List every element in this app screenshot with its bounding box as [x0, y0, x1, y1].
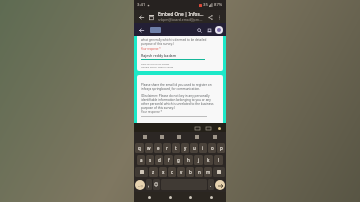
staticText: r — [166, 145, 168, 151]
button[interactable]: c — [168, 167, 176, 177]
button[interactable]: i — [199, 143, 207, 153]
staticText: j — [198, 157, 200, 163]
button[interactable]: Recents — [185, 192, 195, 202]
staticText: v — [180, 169, 183, 175]
staticText: h — [187, 157, 190, 163]
staticText: w — [147, 145, 151, 151]
button[interactable]: Search — [195, 26, 203, 34]
button[interactable]: Keyboard shortcut 2 — [153, 132, 170, 142]
staticText: Embed One | Infosys Springbo… — [158, 11, 204, 17]
staticText: g — [177, 157, 180, 163]
staticText: n — [198, 169, 201, 175]
button[interactable]: m — [204, 167, 212, 177]
staticText: l — [218, 157, 220, 163]
staticText: p — [220, 145, 223, 151]
button[interactable]: y — [181, 143, 189, 153]
staticText: purpose of this survey.) — [141, 106, 175, 110]
button[interactable]: ☺ — [153, 179, 160, 190]
button[interactable]: l — [214, 155, 223, 165]
button[interactable]: n — [195, 167, 203, 177]
button[interactable]: Translate — [193, 124, 201, 132]
button[interactable]: Switch keyboard — [135, 180, 145, 190]
button[interactable]: Share — [206, 13, 214, 21]
staticText: e — [157, 145, 160, 151]
staticText: srbpm@board.email@pm.com — [158, 17, 204, 22]
staticText: i — [202, 145, 204, 151]
staticText: Google Forms. Report Abuse — [141, 65, 174, 68]
button[interactable]: Notifications — [205, 26, 213, 34]
button[interactable]: Back — [144, 192, 154, 202]
button[interactable]: q — [135, 143, 144, 153]
staticText: u — [193, 145, 196, 151]
staticText: Rajesh reddy badam — [141, 53, 177, 58]
staticText: d — [158, 157, 161, 163]
button[interactable]: t — [172, 143, 180, 153]
button[interactable]: z — [149, 167, 158, 177]
staticText: Please share the email id you used to re… — [141, 83, 212, 87]
button[interactable]: p — [217, 143, 225, 153]
staticText: t — [175, 145, 177, 151]
button[interactable]: f — [164, 155, 173, 165]
button[interactable]: r — [163, 143, 171, 153]
button[interactable]: Clipboard — [204, 124, 212, 132]
button[interactable]: what generally which is deemed to be det… — [137, 36, 223, 71]
staticText: 35 — [203, 2, 208, 8]
button[interactable]: w — [145, 143, 153, 153]
button[interactable]: Keyboard shortcut 4 — [188, 132, 206, 142]
staticText: , — [148, 182, 150, 188]
staticText: q — [138, 145, 141, 151]
staticText: what generally which is deemed to be det… — [141, 38, 207, 42]
button[interactable]: Keyboard shortcut 3 — [170, 132, 188, 142]
staticText: identifiable information belonging to yo… — [141, 98, 211, 102]
staticText: s — [149, 157, 152, 163]
button[interactable]: b — [186, 167, 194, 177]
staticText: purpose of this survey.) — [141, 42, 174, 46]
button[interactable]: k — [204, 155, 213, 165]
staticText: f — [168, 157, 170, 163]
button[interactable]: Keyboard shortcut 5 — [206, 132, 224, 142]
button[interactable]: Shift — [135, 167, 148, 177]
button[interactable]: Enter — [215, 180, 225, 190]
button[interactable]: Settings — [215, 124, 223, 132]
staticText: Your response * — [141, 110, 163, 114]
button[interactable]: More options — [215, 13, 223, 21]
staticText: . — [210, 182, 212, 188]
staticText: other person(s) which is unrelated to th… — [141, 102, 214, 106]
staticText: c — [171, 169, 174, 175]
button[interactable]: v — [177, 167, 185, 177]
staticText: y — [184, 145, 187, 151]
button[interactable]: Back — [137, 13, 145, 21]
button[interactable]: Archive — [147, 13, 155, 21]
button[interactable]: u — [190, 143, 198, 153]
button[interactable]: d — [155, 155, 163, 165]
staticText: a — [140, 157, 143, 163]
staticText: 87% — [214, 2, 223, 8]
button[interactable]: Assistant — [206, 192, 216, 202]
button[interactable]: Home — [165, 192, 175, 202]
button[interactable]: e — [154, 143, 162, 153]
button[interactable]: h — [184, 155, 193, 165]
button[interactable]: o — [208, 143, 216, 153]
staticText: k — [207, 157, 210, 163]
button[interactable]: , — [146, 179, 152, 190]
button[interactable]: s — [146, 155, 154, 165]
staticText: o — [211, 145, 214, 151]
button[interactable]: Keyboard shortcut 1 — [136, 132, 153, 142]
button[interactable]: a — [137, 155, 145, 165]
staticText: b — [189, 169, 192, 175]
button[interactable]: Please share the email id you used to re… — [137, 75, 223, 123]
staticText: Your response * — [141, 47, 161, 51]
button[interactable]: x — [159, 167, 167, 177]
button[interactable]: j — [194, 155, 203, 165]
staticText: (Disclaimer: Please do not key in any pe… — [141, 94, 210, 98]
button[interactable]: Back — [137, 26, 145, 34]
button[interactable]: . — [208, 179, 214, 190]
button[interactable]: g — [174, 155, 183, 165]
button[interactable]: Backspace — [213, 167, 225, 177]
button[interactable]: Account — [215, 26, 223, 34]
staticText: x — [162, 169, 165, 175]
staticText: z — [152, 169, 155, 175]
button[interactable]: Springboard logo — [150, 27, 161, 33]
staticText: m — [206, 169, 211, 175]
